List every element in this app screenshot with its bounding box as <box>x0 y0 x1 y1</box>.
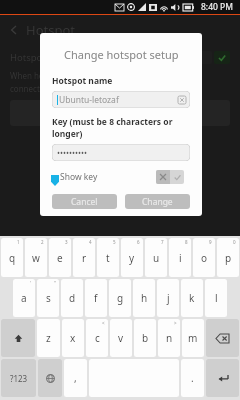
button[interactable]: l <box>205 279 227 317</box>
staticText: connection. <box>10 83 54 94</box>
button[interactable]: 7 <box>145 238 167 277</box>
button[interactable]: 0 <box>217 238 239 277</box>
staticText: b <box>142 331 149 345</box>
staticText: s <box>46 291 51 305</box>
button[interactable]: z <box>37 319 60 357</box>
button[interactable]: f <box>85 279 107 317</box>
staticText: u <box>153 251 160 265</box>
button[interactable]: j <box>157 279 179 317</box>
staticText: o <box>201 251 208 265</box>
staticText: , <box>74 371 77 385</box>
staticText: m <box>188 331 198 345</box>
staticText: 1 <box>17 239 20 245</box>
button[interactable]: ?123 <box>1 359 36 397</box>
button[interactable]: 5 <box>97 238 119 277</box>
button[interactable]: Cancel <box>52 194 117 209</box>
button[interactable]: ' <box>13 279 35 317</box>
button[interactable]: •••••••••• <box>52 144 190 161</box>
staticText: r <box>82 251 87 265</box>
staticText: z <box>46 331 51 345</box>
staticText: e <box>57 251 63 265</box>
staticText: q <box>9 251 16 265</box>
staticText: Cancel <box>71 196 98 208</box>
button[interactable]: 3 <box>49 238 71 277</box>
button[interactable]: 6 <box>121 238 143 277</box>
button[interactable]: 1 <box>1 238 23 277</box>
button[interactable]: > <box>158 319 180 357</box>
staticText: k <box>189 291 195 305</box>
staticText: p <box>225 251 232 265</box>
button[interactable]: g <box>109 279 131 317</box>
staticText: Ubuntu-letozaf <box>59 94 119 106</box>
staticText: c <box>95 331 100 345</box>
button[interactable]: 2 <box>25 238 47 277</box>
staticText: j <box>167 291 170 305</box>
staticText: 4 <box>89 239 92 245</box>
staticText: f <box>94 291 98 305</box>
staticText: Key (must be 8 characters or <box>52 116 173 128</box>
staticText: h <box>141 291 148 305</box>
staticText: y <box>129 251 135 265</box>
other: Clear text <box>178 96 186 104</box>
staticText: 7 <box>161 239 164 245</box>
staticText: . <box>191 371 194 385</box>
button[interactable]: < <box>86 319 108 357</box>
staticText: t <box>106 251 110 265</box>
staticText: Show key <box>60 171 98 183</box>
staticText: " <box>54 280 56 286</box>
staticText: v <box>118 331 124 345</box>
staticText: l <box>215 291 218 305</box>
button[interactable]: 9 <box>193 238 215 277</box>
staticText: Change <box>142 196 173 208</box>
staticText: Hotspot <box>10 51 46 64</box>
staticText: a <box>21 291 27 305</box>
staticText: 2 <box>41 239 44 245</box>
staticText: < <box>102 320 105 326</box>
button[interactable]: Enter <box>206 359 239 397</box>
staticText: 8 <box>185 239 188 245</box>
button[interactable]: , <box>64 359 87 397</box>
button[interactable]: . <box>181 359 204 397</box>
button[interactable]: Change <box>125 194 190 209</box>
button[interactable]: 4 <box>73 238 95 277</box>
button[interactable]: h <box>133 279 155 317</box>
staticText: i <box>179 251 182 265</box>
staticText: 9 <box>209 239 212 245</box>
staticText: ' <box>30 280 32 286</box>
staticText: When hotspot is on you can share your <box>10 70 157 81</box>
staticText: Hotspot name <box>52 75 113 87</box>
button[interactable]: k <box>181 279 203 317</box>
staticText: ?123 <box>10 373 28 384</box>
staticText: n <box>166 331 173 345</box>
button[interactable]: x <box>62 319 84 357</box>
staticText: 0 <box>233 239 236 245</box>
button[interactable]: " <box>37 279 59 317</box>
button[interactable]: d <box>61 279 83 317</box>
button[interactable]: 8 <box>169 238 191 277</box>
button[interactable]: m <box>182 319 204 357</box>
staticText: 6 <box>137 239 140 245</box>
staticText: g <box>117 291 124 305</box>
button[interactable]: b <box>134 319 156 357</box>
staticText: > <box>174 320 177 326</box>
button[interactable]: Ubuntu-letozaf <box>52 91 190 108</box>
staticText: 5 <box>113 239 116 245</box>
button[interactable]: Backspace <box>206 319 239 357</box>
button[interactable]: Shift <box>1 319 35 357</box>
button[interactable]: Change language <box>38 359 62 397</box>
staticText: 3 <box>65 239 68 245</box>
staticText: 8:40 PM <box>201 1 233 13</box>
staticText: Hotspot <box>26 21 75 39</box>
staticText: w <box>32 251 40 265</box>
staticText: x <box>70 331 76 345</box>
button[interactable]: Show key toggle <box>156 170 184 184</box>
staticText: longer) <box>52 128 83 140</box>
staticText: •••••••••• <box>57 147 88 158</box>
staticText: d <box>69 291 76 305</box>
button[interactable]: v <box>110 319 132 357</box>
staticText: Change hotspot setup <box>64 47 179 62</box>
